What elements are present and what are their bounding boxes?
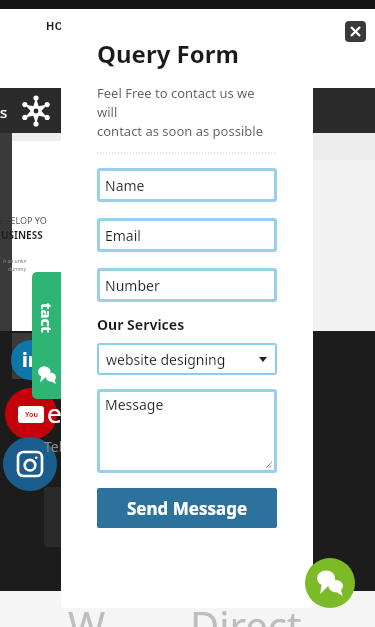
- button[interactable]: Email: [100, 221, 274, 249]
- staticText: Name: [105, 176, 145, 195]
- staticText: Direct: [190, 598, 302, 627]
- staticText: Message: [105, 395, 164, 414]
- staticText: in: [22, 347, 41, 373]
- button[interactable]: LinkedIn: [11, 340, 51, 380]
- staticText: Query Form: [97, 37, 239, 70]
- button[interactable]: website designing: [99, 345, 275, 373]
- staticText: USINESS: [1, 228, 43, 242]
- staticText: W: [68, 598, 106, 627]
- button[interactable]: Close: [345, 21, 366, 42]
- staticText: dummy: [8, 266, 27, 273]
- staticText: Email: [105, 226, 141, 245]
- staticText: s: [0, 102, 8, 122]
- staticText: HOME: [46, 18, 80, 33]
- staticText: EVELOP YO: [0, 214, 47, 226]
- staticText: Number: [105, 276, 160, 295]
- staticText: Feel Free to contact us we will contact …: [97, 84, 277, 140]
- button[interactable]: Number: [100, 271, 274, 299]
- button[interactable]: Contact Us: [32, 272, 62, 399]
- button[interactable]: Open chat: [305, 558, 355, 608]
- staticText: You: [25, 410, 38, 420]
- staticText: Our Services: [97, 315, 185, 334]
- button[interactable]: Name: [100, 171, 274, 199]
- staticText: e: [47, 395, 62, 430]
- staticText: n an unkn: [3, 258, 27, 265]
- button[interactable]: YouTube: [5, 388, 57, 440]
- staticText: Send Message: [127, 497, 248, 520]
- button[interactable]: Message: [100, 392, 274, 470]
- staticText: website designing: [106, 350, 226, 369]
- staticText: Tell: [44, 437, 66, 456]
- button[interactable]: Instagram: [3, 437, 57, 491]
- button[interactable]: Send Message: [97, 488, 277, 528]
- staticText: Contact Us: [32, 303, 62, 333]
